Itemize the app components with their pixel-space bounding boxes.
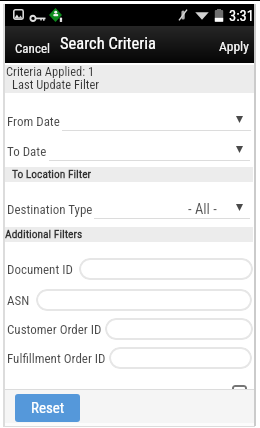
staticText: Search Criteria: [60, 34, 156, 53]
button[interactable]: [3, 196, 255, 222]
button[interactable]: [3, 258, 255, 282]
other: Screenshot: [13, 9, 24, 20]
staticText: Document ID: [7, 262, 73, 277]
staticText: - All -: [188, 201, 217, 218]
staticText: Additional Filters: [5, 227, 83, 240]
button[interactable]: Search Criteria: [60, 23, 156, 63]
button[interactable]: [3, 138, 255, 164]
button[interactable]: [3, 318, 255, 342]
other: Vibrate: [179, 9, 187, 21]
staticText: Customer Order ID: [7, 322, 102, 337]
button[interactable]: Reset: [15, 394, 80, 422]
staticText: To Location Filter: [12, 167, 92, 180]
other: Battery: [214, 9, 224, 22]
staticText: Last Update Filter: [12, 77, 100, 91]
staticText: Criteria Applied: 1: [6, 64, 95, 78]
staticText: Fulfillment Order ID: [7, 351, 106, 366]
staticText: 3:31: [229, 8, 254, 25]
staticText: To Date: [7, 144, 47, 159]
button[interactable]: Toggle option: [232, 385, 247, 400]
staticText: Apply: [219, 38, 249, 54]
button[interactable]: Apply: [213, 26, 255, 66]
staticText: From Date: [7, 114, 60, 129]
other: Wi-Fi: [195, 9, 209, 20]
staticText: Reset: [31, 399, 65, 417]
staticText: ASN: [7, 293, 30, 308]
button[interactable]: Cancel: [10, 28, 55, 68]
other: App installed: [49, 8, 62, 22]
other: VPN active: [29, 10, 46, 22]
button[interactable]: [3, 289, 255, 313]
staticText: Cancel: [15, 41, 50, 56]
staticText: Destination Type: [7, 202, 93, 217]
button[interactable]: [3, 108, 255, 134]
button[interactable]: [3, 347, 255, 371]
